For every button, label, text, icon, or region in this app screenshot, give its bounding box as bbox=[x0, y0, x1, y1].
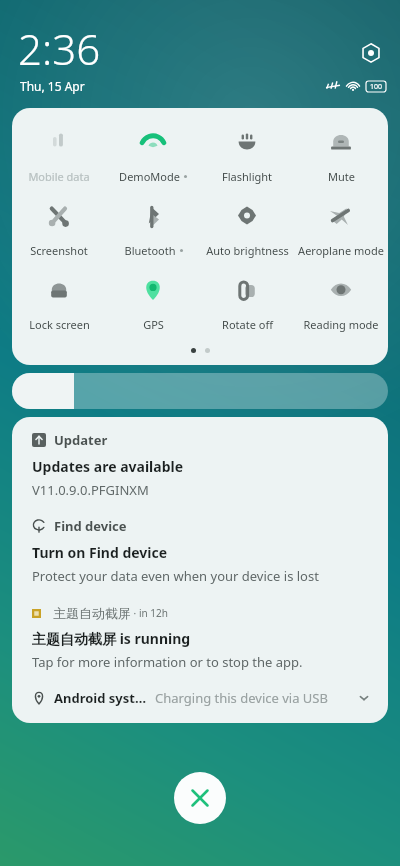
button[interactable]: Bluetooth bbox=[106, 200, 200, 260]
staticText: Mute bbox=[328, 169, 355, 184]
staticText: 主题自动截屏 bbox=[53, 605, 131, 621]
staticText: Charging this device via USB bbox=[155, 689, 354, 707]
button[interactable]: DemoMode bbox=[106, 126, 200, 186]
staticText: Auto brightness bbox=[206, 243, 289, 258]
staticText: Aeroplane mode bbox=[298, 243, 384, 258]
staticText: Updater bbox=[54, 431, 108, 449]
button[interactable]: Reading mode bbox=[294, 274, 388, 334]
button[interactable]: GPS bbox=[106, 274, 200, 334]
staticText: Turn on Find device bbox=[32, 543, 168, 562]
button[interactable]: Auto brightness bbox=[200, 200, 294, 260]
staticText: GPS bbox=[143, 317, 164, 332]
button[interactable]: 主题自动截屏 bbox=[12, 587, 388, 673]
staticText: Protect your data even when your device … bbox=[32, 567, 319, 585]
staticText: 主题自动截屏 is running bbox=[32, 629, 191, 648]
button[interactable]: Updater bbox=[12, 417, 388, 501]
button[interactable]: Aeroplane mode bbox=[294, 200, 388, 260]
button[interactable]: Close bbox=[174, 772, 226, 824]
staticText: Find device bbox=[54, 517, 127, 535]
staticText: Rotate off bbox=[222, 317, 273, 332]
staticText: · in 12h bbox=[131, 606, 168, 620]
staticText: Flashlight bbox=[222, 169, 272, 184]
staticText: Screenshot bbox=[30, 243, 88, 258]
button[interactable]: Rotate off bbox=[200, 274, 294, 334]
staticText: V11.0.9.0.PFGINXM bbox=[32, 481, 149, 499]
button[interactable]: Find device bbox=[12, 501, 388, 587]
button[interactable]: Mobile data bbox=[12, 126, 106, 186]
button[interactable]: Brightness bbox=[12, 373, 388, 409]
staticText: 2:36 bbox=[18, 20, 101, 77]
staticText: Thu, 15 Apr bbox=[20, 78, 85, 94]
staticText: Mobile data bbox=[28, 169, 90, 184]
staticText: Bluetooth bbox=[124, 243, 176, 258]
staticText: Lock screen bbox=[29, 317, 90, 332]
staticText: DemoMode bbox=[119, 169, 180, 184]
button[interactable]: Flashlight bbox=[200, 126, 294, 186]
button[interactable]: Lock screen bbox=[12, 274, 106, 334]
staticText: Android syst… bbox=[54, 689, 147, 707]
staticText: Updates are available bbox=[32, 457, 184, 476]
button[interactable]: Settings bbox=[358, 40, 384, 66]
staticText: Reading mode bbox=[303, 317, 379, 332]
button[interactable]: Mute bbox=[294, 126, 388, 186]
button[interactable]: Android syst… bbox=[12, 683, 388, 723]
staticText: 100 bbox=[370, 82, 383, 92]
staticText: Tap for more information or to stop the … bbox=[32, 653, 303, 671]
button[interactable]: Screenshot bbox=[12, 200, 106, 260]
